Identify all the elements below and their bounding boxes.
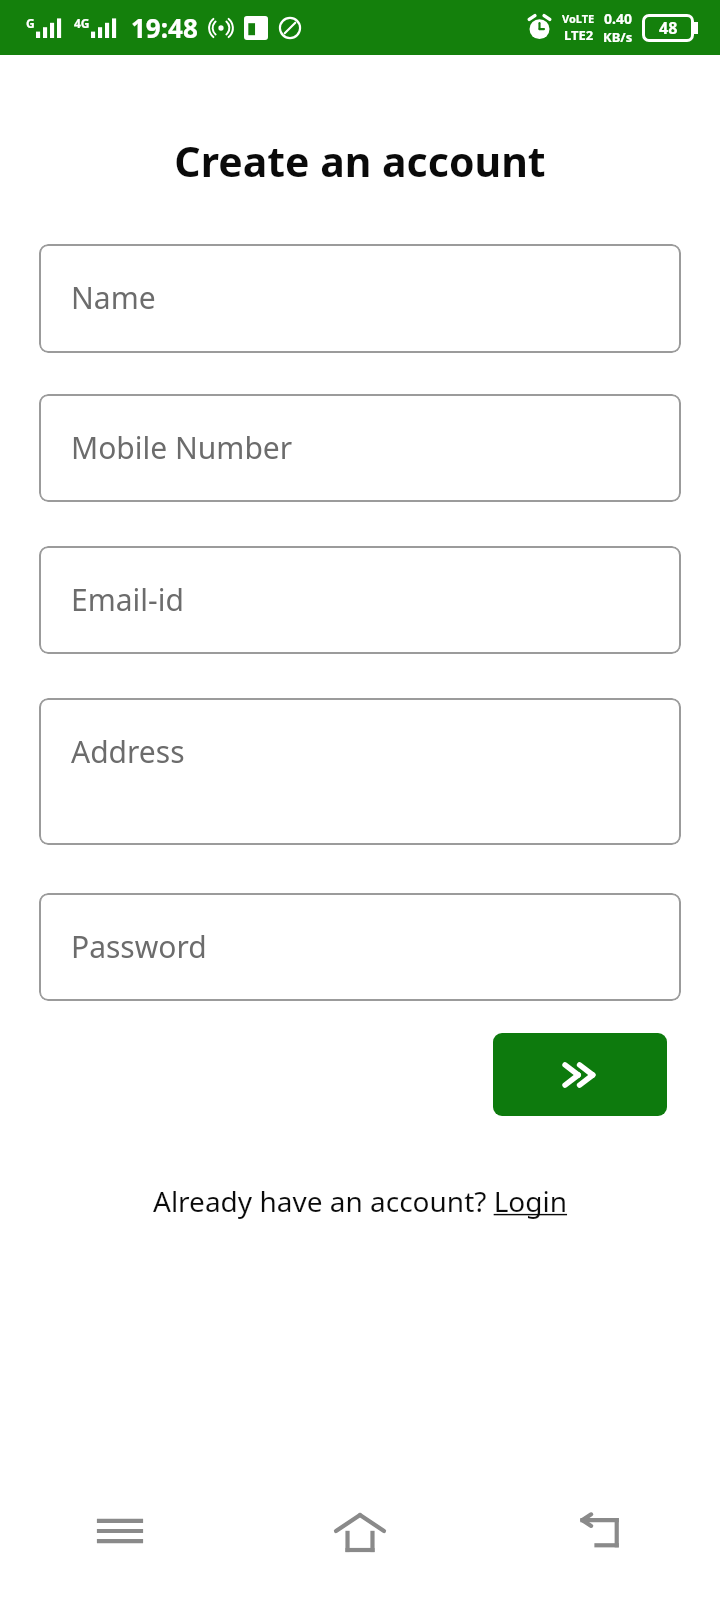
button[interactable]: Home <box>240 1496 480 1566</box>
button[interactable]: Email-id <box>39 546 681 654</box>
staticText: 0.40 <box>604 9 632 28</box>
button[interactable]: Next <box>493 1033 667 1116</box>
staticText: Name <box>71 277 156 318</box>
staticText: 4G <box>74 15 90 31</box>
button[interactable]: Already have an account? Login <box>153 1182 568 1220</box>
button[interactable]: Password <box>39 893 681 1001</box>
staticText: Email-id <box>71 579 184 620</box>
staticText: 48 <box>659 17 678 39</box>
button[interactable]: Back <box>480 1496 720 1566</box>
button[interactable]: Recent apps <box>0 1496 240 1566</box>
staticText: Mobile Number <box>71 427 293 468</box>
button[interactable]: Address <box>39 698 681 845</box>
staticText: Password <box>71 926 207 967</box>
staticText: Address <box>71 731 185 772</box>
staticText: Create an account <box>0 133 720 189</box>
staticText: LTE2 <box>564 26 594 44</box>
staticText: VoLTE <box>562 11 595 26</box>
staticText: 19:48 <box>131 10 198 45</box>
button[interactable]: Mobile Number <box>39 394 681 502</box>
button[interactable]: Name <box>39 244 681 353</box>
staticText: KB/s <box>603 28 633 46</box>
staticText: G <box>26 15 35 31</box>
